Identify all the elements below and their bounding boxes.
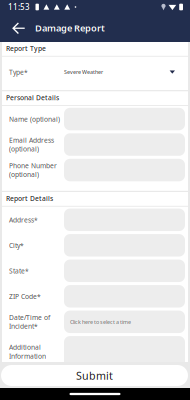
button[interactable]: Type*	[2, 57, 188, 87]
staticText: ZIP Code*	[9, 292, 41, 301]
button[interactable]: City*	[2, 233, 188, 258]
staticText: State*	[9, 266, 29, 275]
staticText: Report Details	[6, 194, 53, 203]
staticText: Name (optional)	[9, 115, 60, 123]
staticText: Additional Information (optional)	[9, 343, 46, 369]
button[interactable]: Phone Number (optional)	[2, 157, 188, 183]
staticText: Report Type	[6, 44, 46, 53]
button[interactable]: Submit	[0, 362, 190, 388]
staticText: Phone Number (optional)	[9, 161, 57, 179]
button[interactable]: Date/Time of Incident*	[2, 309, 188, 335]
staticText: Damage Report	[35, 22, 105, 34]
button[interactable]: ZIP Code*	[2, 284, 188, 309]
staticText: Personal Details	[6, 93, 59, 102]
button[interactable]: Back	[2, 14, 35, 42]
staticText: Click here to select a time	[70, 318, 131, 325]
button[interactable]: Email Address (optional)	[2, 132, 188, 157]
button[interactable]: State*	[2, 258, 188, 284]
staticText: Date/Time of Incident*	[9, 313, 50, 331]
staticText: Submit	[76, 368, 113, 383]
staticText: 11:53	[8, 2, 30, 12]
staticText: Address*	[9, 215, 38, 224]
button[interactable]: Name (optional)	[2, 106, 188, 132]
staticText: Type*	[9, 68, 28, 76]
staticText: City*	[9, 241, 24, 250]
staticText: Severe Weather	[64, 68, 103, 76]
staticText: Email Address (optional)	[9, 136, 54, 153]
button[interactable]: Address*	[2, 207, 188, 233]
button[interactable]: Additional Information (optional)	[2, 335, 188, 378]
